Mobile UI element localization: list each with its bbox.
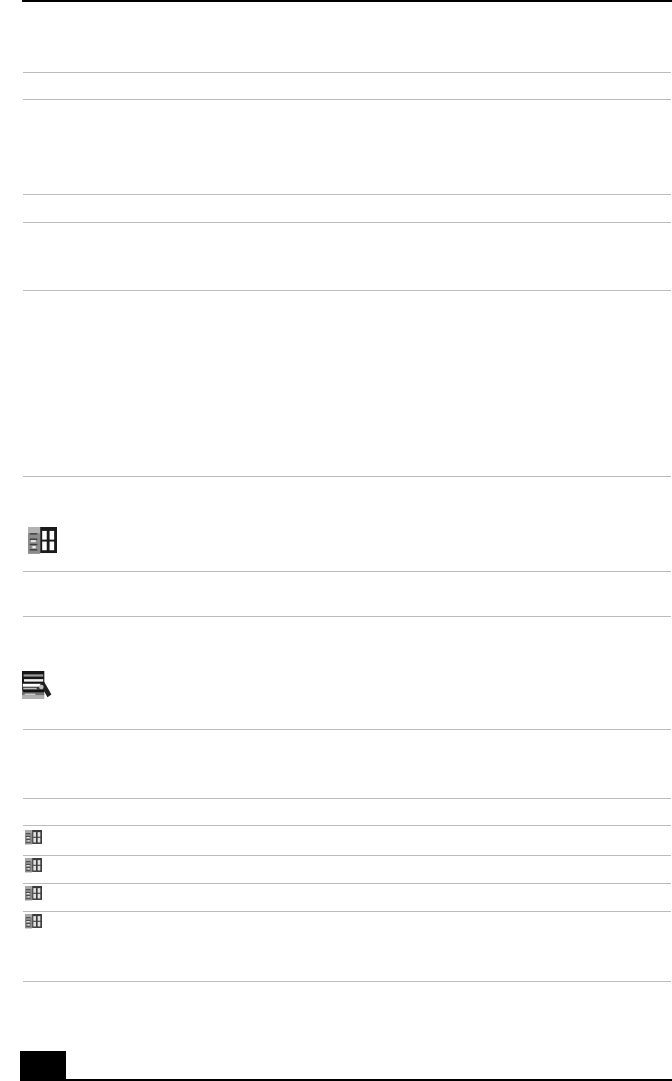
button[interactable]: Broken image placeholder	[25, 830, 42, 845]
button[interactable]: Broken image placeholder	[25, 886, 42, 901]
button[interactable]: Broken image placeholder	[25, 914, 42, 929]
button[interactable]: Form placeholder	[22, 671, 53, 699]
button[interactable]: Broken image placeholder	[25, 858, 42, 873]
button[interactable]: Broken image placeholder	[28, 527, 57, 555]
